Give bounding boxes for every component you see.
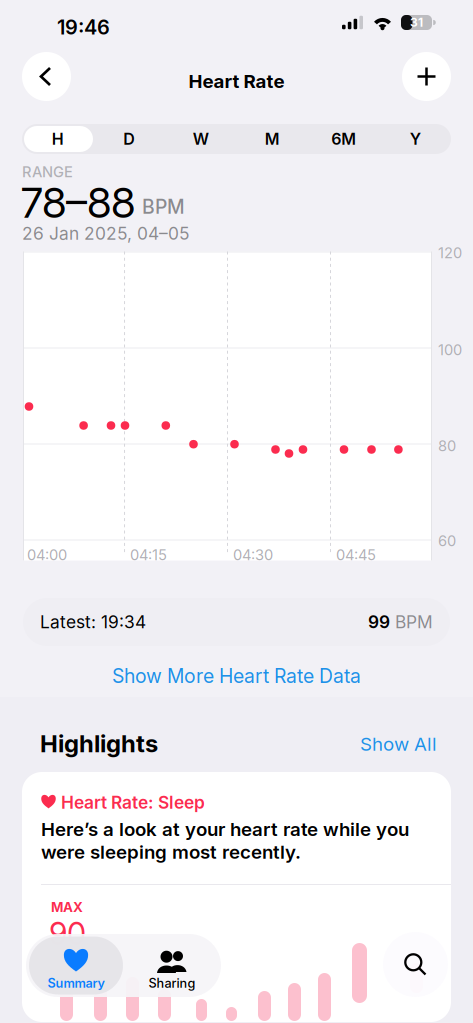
button[interactable]: Back bbox=[22, 52, 71, 101]
button[interactable]: Show More Heart Rate Data bbox=[0, 646, 473, 697]
staticText: 80 bbox=[438, 437, 456, 455]
button[interactable]: Y bbox=[379, 124, 451, 154]
button[interactable]: Search bbox=[383, 932, 448, 997]
staticText: Show All bbox=[360, 733, 437, 755]
staticText: 04:15 bbox=[130, 546, 167, 564]
staticText: 26 Jan 2025, 04–05 bbox=[22, 223, 190, 244]
staticText: RANGE bbox=[22, 163, 73, 181]
staticText: Heart Rate bbox=[188, 70, 284, 93]
button[interactable]: M bbox=[236, 124, 308, 154]
staticText: BPM bbox=[390, 611, 433, 632]
staticText: MAX bbox=[51, 899, 83, 915]
staticText: 60 bbox=[438, 532, 456, 550]
button[interactable]: Sharing bbox=[125, 936, 219, 994]
staticText: W bbox=[193, 129, 209, 149]
staticText: 04:45 bbox=[336, 546, 376, 564]
staticText: 99 bbox=[368, 611, 390, 632]
staticText: 19:46 bbox=[57, 15, 110, 39]
staticText: Y bbox=[410, 129, 421, 149]
staticText: Sharing bbox=[148, 975, 195, 991]
button[interactable]: D bbox=[93, 124, 165, 154]
staticText: 100 bbox=[438, 341, 462, 359]
button[interactable]: Show All bbox=[357, 734, 437, 754]
button[interactable]: 6M bbox=[308, 124, 379, 154]
staticText: Highlights bbox=[40, 729, 158, 758]
staticText: 31 bbox=[410, 15, 423, 30]
button[interactable]: Add data bbox=[402, 52, 451, 101]
staticText: Heart Rate: Sleep bbox=[61, 792, 205, 813]
staticText: BPM bbox=[142, 195, 185, 218]
staticText: 78–88 bbox=[21, 177, 135, 228]
staticText: 90 bbox=[49, 915, 86, 952]
staticText: 04:00 bbox=[27, 546, 67, 564]
staticText: D bbox=[123, 129, 135, 149]
staticText: Show More Heart Rate Data bbox=[112, 664, 361, 688]
staticText: Here’s a look at your heart rate while y… bbox=[41, 818, 409, 863]
staticText: H bbox=[52, 129, 64, 149]
staticText: Latest: 19:34 bbox=[40, 611, 146, 632]
staticText: 6M bbox=[331, 129, 356, 149]
button[interactable]: H bbox=[22, 124, 93, 154]
staticText: 120 bbox=[438, 244, 462, 262]
button[interactable]: W bbox=[165, 124, 236, 154]
staticText: Summary bbox=[47, 975, 104, 991]
staticText: M bbox=[265, 129, 280, 149]
staticText: 04:30 bbox=[233, 546, 273, 564]
button[interactable]: Summary bbox=[29, 936, 123, 994]
